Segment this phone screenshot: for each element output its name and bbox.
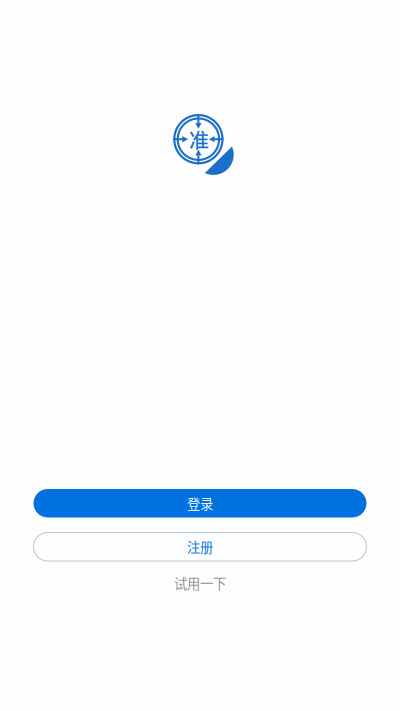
staticText: 登录 — [187, 494, 213, 513]
staticText: 注册 — [187, 537, 213, 556]
staticText: 试用一下 — [174, 573, 226, 593]
button[interactable]: 注册 — [33, 532, 366, 561]
button[interactable]: 登录 — [33, 489, 366, 517]
staticText: 准 — [189, 125, 209, 154]
button[interactable]: 试用一下 — [174, 574, 226, 592]
